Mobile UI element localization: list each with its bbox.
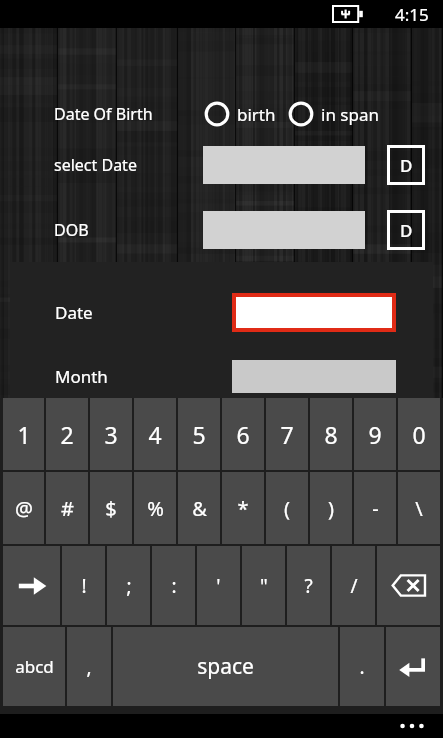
button[interactable]: 9 <box>354 398 396 470</box>
button[interactable]: ) <box>310 472 352 544</box>
button[interactable]: : <box>152 546 195 625</box>
staticText: D <box>400 154 413 177</box>
staticText: $ <box>105 495 117 522</box>
staticText: ) <box>328 495 334 522</box>
staticText: . <box>359 654 365 680</box>
button[interactable]: " <box>242 546 285 625</box>
other: Battery charging <box>333 6 363 22</box>
staticText: DOB <box>54 219 89 241</box>
button[interactable]: \ <box>398 472 440 544</box>
staticText: % <box>147 495 164 522</box>
staticText: abcd <box>15 655 54 678</box>
staticText: 4 <box>148 419 162 450</box>
button[interactable]: 5 <box>178 398 220 470</box>
button[interactable]: Backspace <box>377 546 440 625</box>
button[interactable]: ; <box>107 546 150 625</box>
staticText: space <box>197 652 254 681</box>
button[interactable]: 8 <box>310 398 352 470</box>
staticText: & <box>192 495 207 522</box>
staticText: select Date <box>54 154 137 176</box>
staticText: * <box>237 495 249 522</box>
staticText: 0 <box>412 419 426 450</box>
staticText: / <box>350 573 358 599</box>
staticText: ! <box>81 573 87 599</box>
button[interactable]: 3 <box>90 398 132 470</box>
button[interactable]: 6 <box>222 398 264 470</box>
button[interactable]: Enter <box>386 627 440 706</box>
button[interactable] <box>232 293 396 332</box>
staticText: ; <box>126 573 132 599</box>
staticText: 2 <box>60 419 74 450</box>
button[interactable]: % <box>134 472 176 544</box>
button[interactable]: ( <box>266 472 308 544</box>
button[interactable]: ! <box>62 546 105 625</box>
staticText: in span <box>321 103 379 126</box>
button[interactable]: # <box>46 472 88 544</box>
button[interactable]: . <box>340 627 384 706</box>
button[interactable]: , <box>67 627 111 706</box>
button[interactable]: abcd <box>3 627 65 706</box>
button[interactable]: Tab <box>3 546 60 625</box>
staticText: birth <box>237 103 276 126</box>
button[interactable]: & <box>178 472 220 544</box>
button[interactable]: * <box>222 472 264 544</box>
staticText: Date <box>55 301 93 324</box>
staticText: D <box>400 219 413 242</box>
button[interactable]: / <box>332 546 375 625</box>
staticText: 5 <box>192 419 206 450</box>
staticText: " <box>260 573 268 599</box>
staticText: ' <box>216 573 221 599</box>
staticText: @ <box>15 495 33 522</box>
staticText: 4:15 <box>395 3 429 26</box>
button[interactable]: @ <box>3 472 44 544</box>
staticText: 8 <box>324 419 338 450</box>
button[interactable]: ' <box>197 546 240 625</box>
button[interactable]: - <box>354 472 396 544</box>
button[interactable]: D <box>387 145 425 185</box>
staticText: 9 <box>368 419 382 450</box>
staticText: ? <box>304 573 313 599</box>
staticText: ( <box>284 495 290 522</box>
button[interactable]: in span <box>286 99 381 129</box>
staticText: 1 <box>17 419 31 450</box>
button[interactable]: birth <box>202 99 278 129</box>
button[interactable]: 1 <box>3 398 44 470</box>
button[interactable]: ? <box>287 546 330 625</box>
button[interactable]: More options <box>395 719 429 733</box>
button[interactable]: 4 <box>134 398 176 470</box>
staticText: : <box>171 573 177 599</box>
staticText: 7 <box>280 419 294 450</box>
staticText: \ <box>415 495 423 522</box>
staticText: - <box>372 495 379 522</box>
staticText: Month <box>55 365 108 388</box>
staticText: Date Of Birth <box>54 103 153 125</box>
button[interactable]: space <box>113 627 338 706</box>
button[interactable]: 0 <box>398 398 440 470</box>
button[interactable]: 7 <box>266 398 308 470</box>
staticText: 3 <box>104 419 118 450</box>
button[interactable]: D <box>387 210 425 250</box>
staticText: , <box>86 654 92 680</box>
staticText: 6 <box>236 419 250 450</box>
button[interactable]: 2 <box>46 398 88 470</box>
button[interactable]: $ <box>90 472 132 544</box>
staticText: # <box>61 495 74 522</box>
